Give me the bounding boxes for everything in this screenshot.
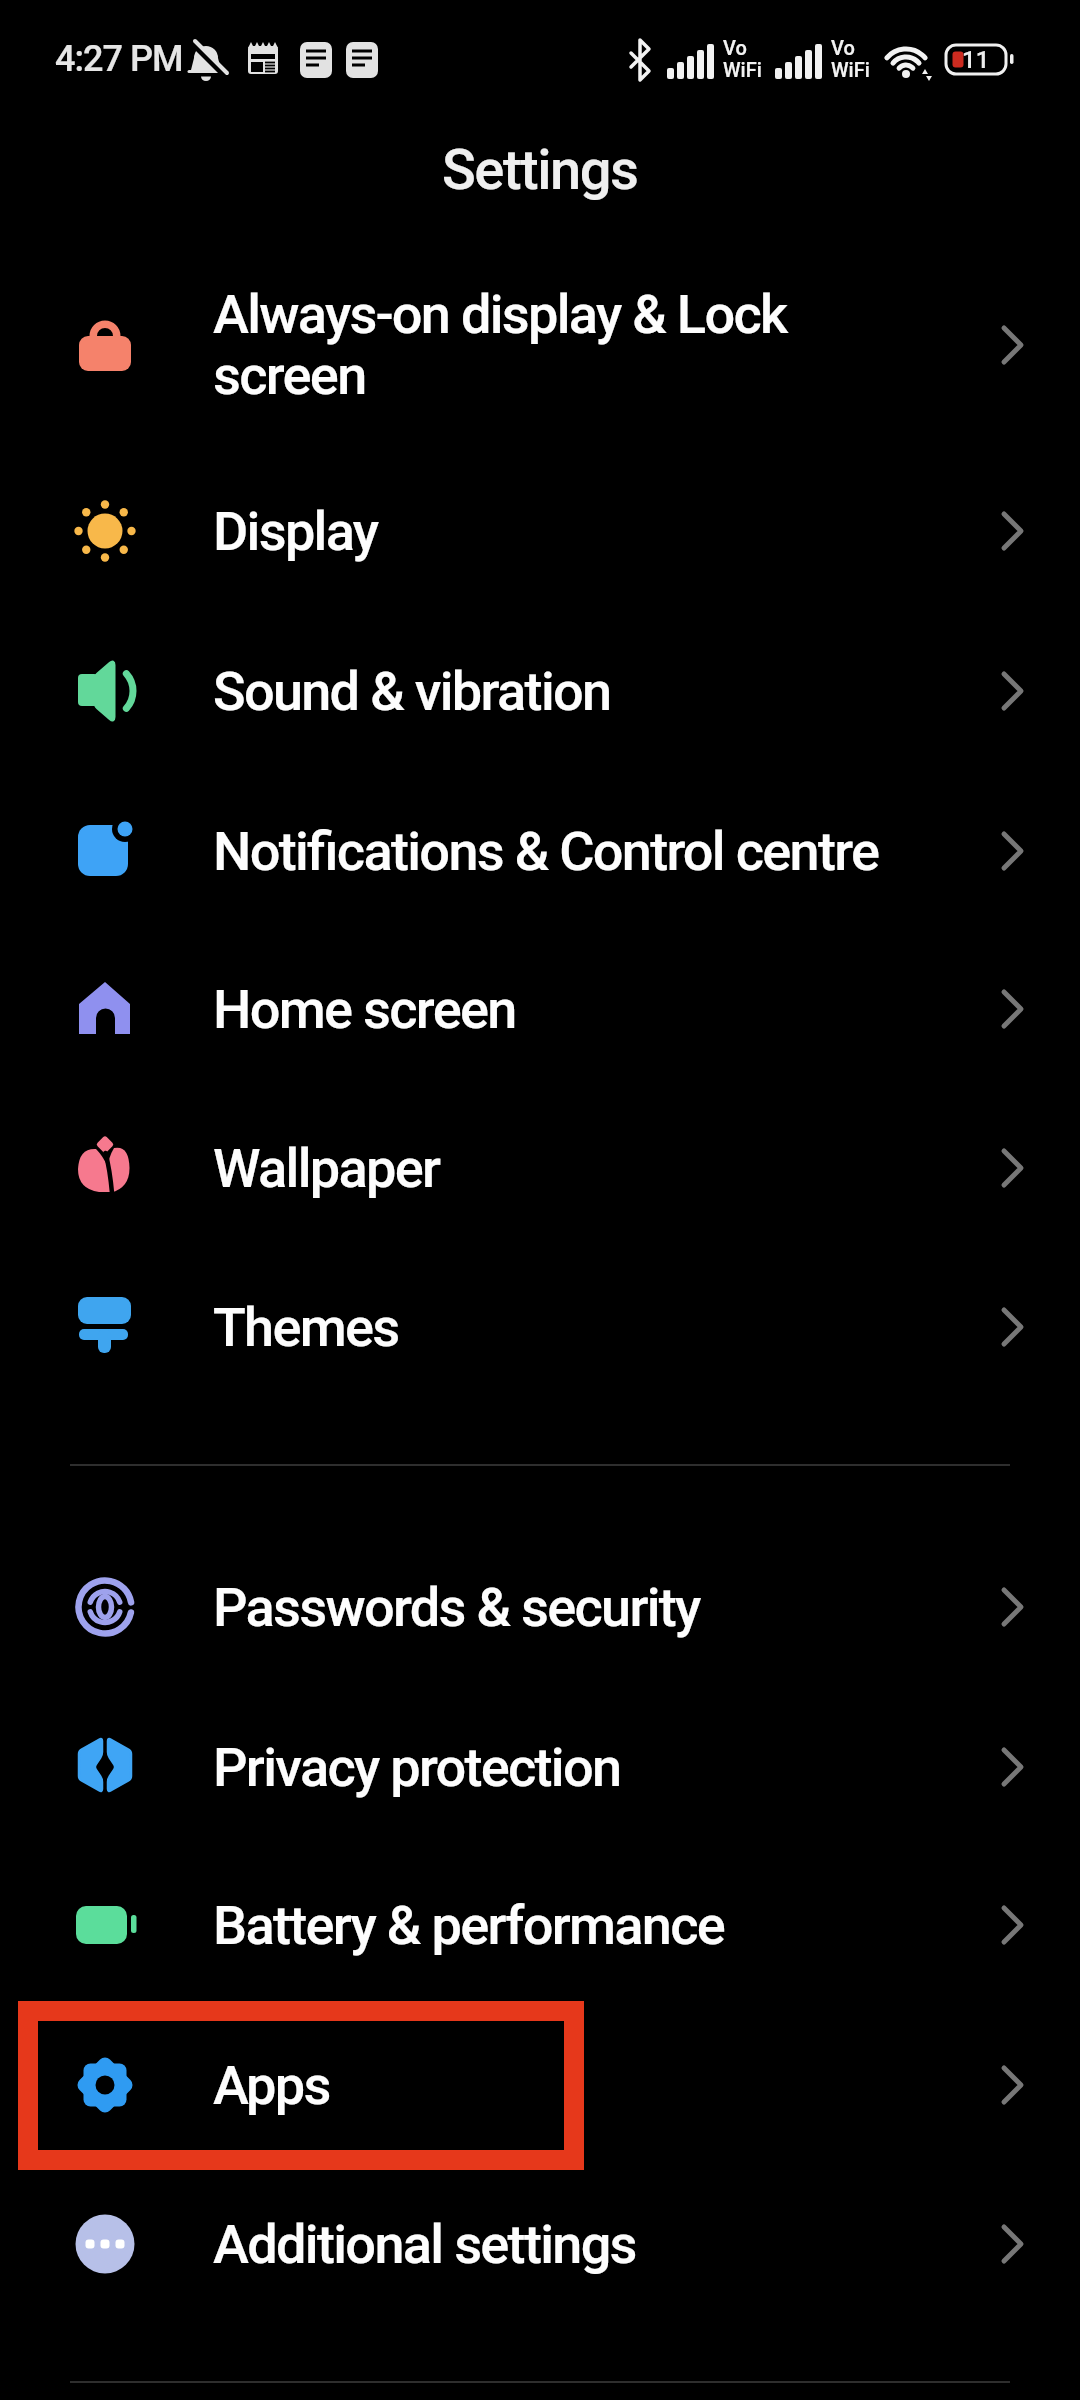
staticText: Passwords & security — [213, 1576, 700, 1639]
button[interactable]: Passwords & security — [0, 1527, 1080, 1687]
button[interactable]: Additional settings — [0, 2164, 1080, 2324]
staticText: Themes — [213, 1296, 399, 1359]
button[interactable]: Privacy protection — [0, 1687, 1080, 1847]
button[interactable]: Notifications & Control centre — [0, 771, 1080, 931]
button[interactable]: Display — [0, 451, 1080, 611]
button[interactable]: Themes — [0, 1247, 1080, 1407]
staticText: Notifications & Control centre — [213, 820, 879, 883]
staticText: Display — [213, 500, 378, 563]
staticText: Wallpaper — [213, 1137, 440, 1200]
staticText: Always-on display & Lock screen — [213, 283, 787, 407]
button[interactable]: Apps — [0, 2005, 1080, 2165]
staticText: Sound & vibration — [213, 660, 611, 723]
button[interactable]: Home screen — [0, 929, 1080, 1089]
button[interactable]: Always-on display & Lock screen — [0, 239, 1080, 451]
button[interactable]: Wallpaper — [0, 1088, 1080, 1248]
button[interactable]: Battery & performance — [0, 1845, 1080, 2005]
staticText: Privacy protection — [213, 1736, 621, 1799]
staticText: Vo WiFi — [723, 36, 762, 82]
staticText: Vo WiFi — [831, 36, 870, 82]
staticText: Apps — [213, 2054, 330, 2117]
button[interactable]: Sound & vibration — [0, 611, 1080, 771]
staticText: 11 — [962, 46, 990, 74]
staticText: Settings — [442, 137, 638, 203]
staticText: Home screen — [213, 978, 516, 1041]
staticText: Additional settings — [213, 2213, 636, 2276]
staticText: Battery & performance — [213, 1894, 725, 1957]
staticText: 4:27 PM — [55, 38, 183, 80]
